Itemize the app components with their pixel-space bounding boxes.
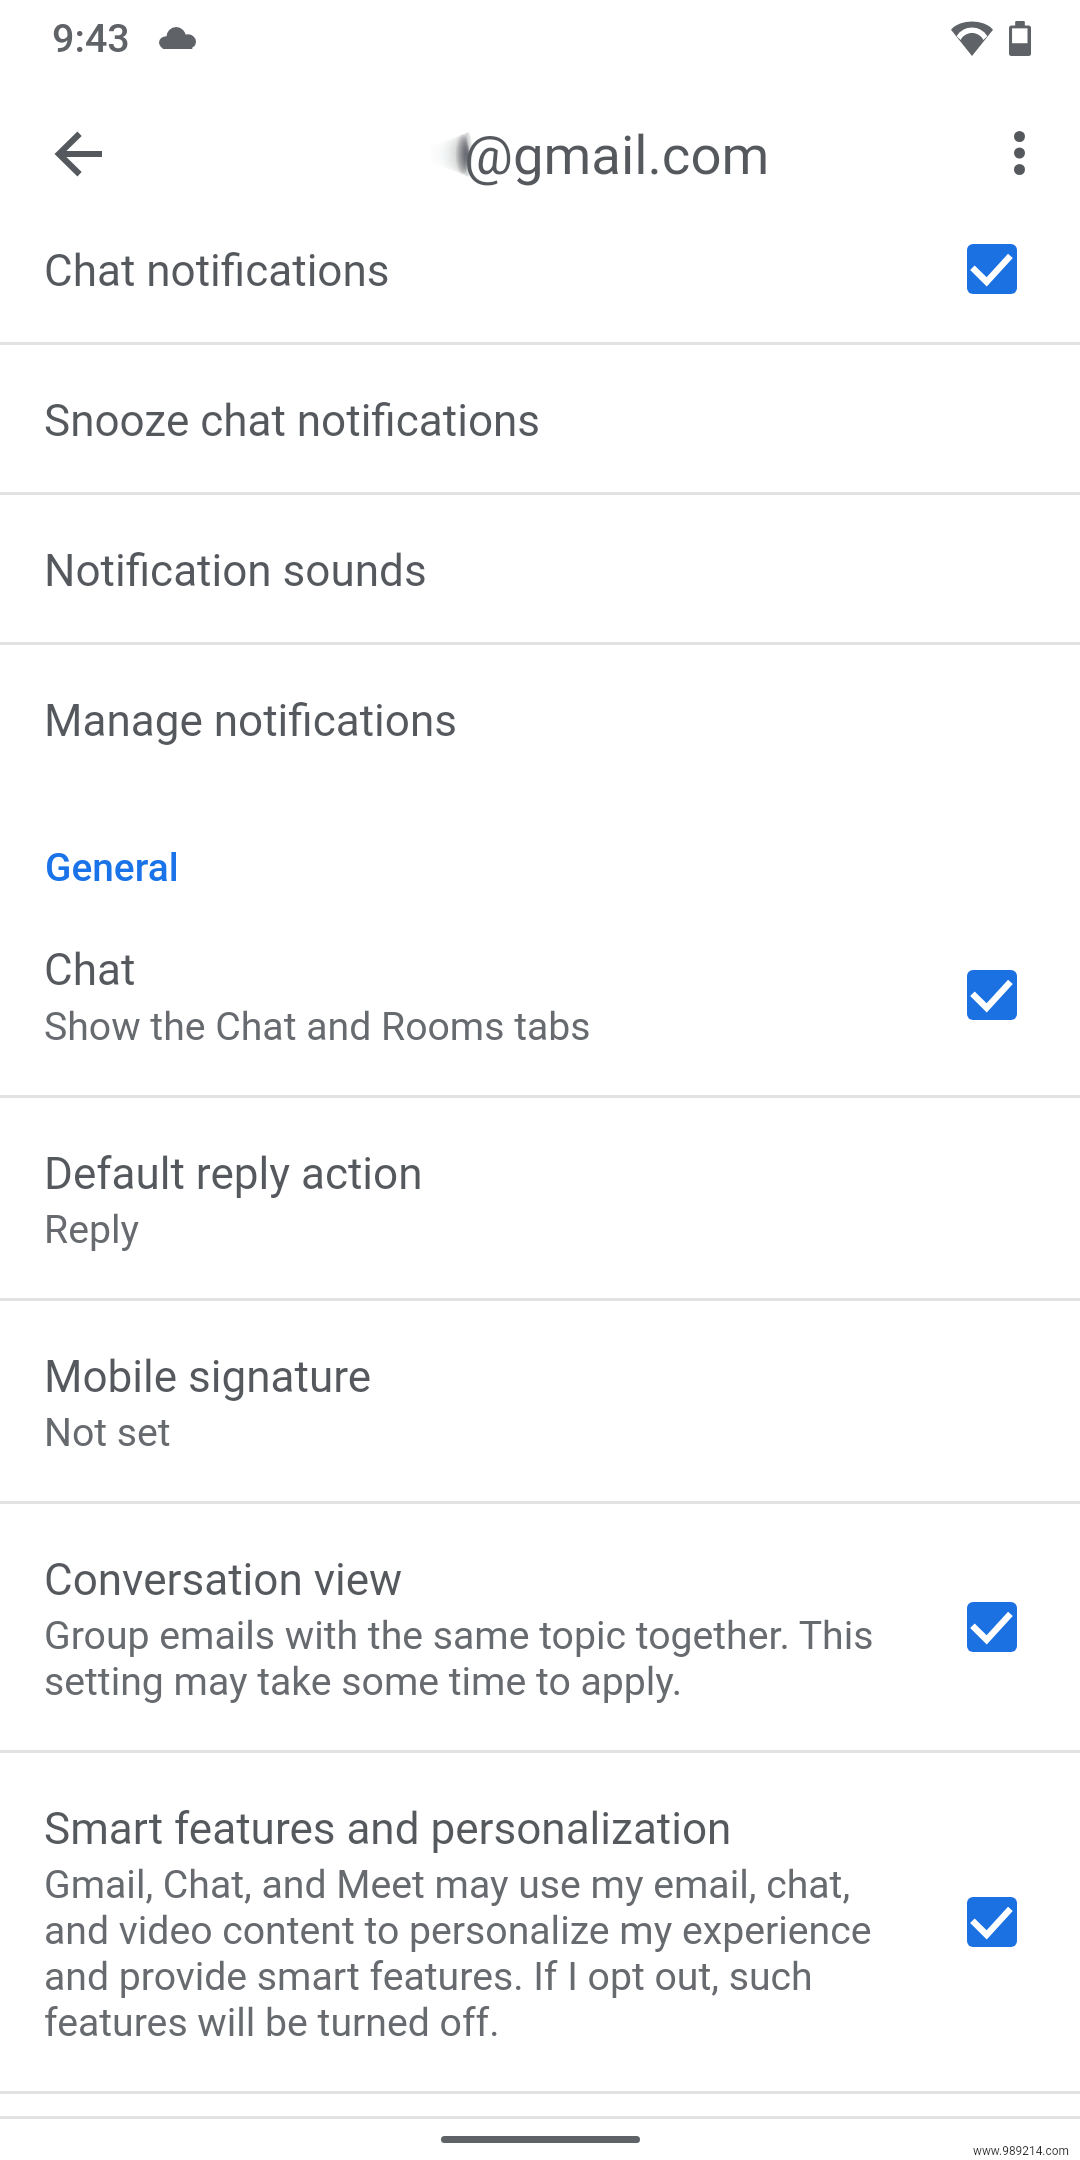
button[interactable]: Smart features and personalization [0, 1753, 1080, 2091]
staticText: Gmail, Chat, and Meet may use my email, … [44, 1861, 906, 2045]
button[interactable]: Chat [0, 905, 1080, 1095]
button[interactable]: Manage notifications [0, 645, 1080, 800]
button[interactable]: Chat notifications [0, 196, 1080, 342]
staticText: Conversation view [44, 1554, 403, 1606]
button[interactable]: Navigate up [36, 110, 124, 198]
button[interactable]: Conversation view [0, 1504, 1080, 1750]
staticText: Manage notifications [44, 695, 458, 747]
button[interactable]: Notification sounds [0, 495, 1080, 642]
staticText: Mobile signature [44, 1351, 372, 1403]
button[interactable]: Default reply action [0, 1098, 1080, 1298]
staticText: Snooze chat notifications [44, 395, 541, 447]
button[interactable]: Chat, checked [967, 970, 1017, 1020]
staticText: Default reply action [44, 1148, 423, 1200]
staticText: @gmail.com [464, 123, 770, 187]
staticText: Group emails with the same topic togethe… [44, 1612, 906, 1704]
button[interactable]: More options [975, 109, 1063, 197]
staticText: 9:43 [52, 15, 130, 61]
button[interactable]: Conversation view, checked [967, 1602, 1017, 1652]
button[interactable]: Chat notifications, checked [967, 244, 1017, 294]
staticText: Not set [44, 1410, 171, 1456]
staticText: Chat [44, 944, 136, 996]
button[interactable]: Smart features and personalization, chec… [967, 1897, 1017, 1947]
staticText: www.989214.com [973, 2144, 1069, 2158]
staticText: Reply [44, 1207, 140, 1253]
staticText: Show the Chat and Rooms tabs [44, 1004, 591, 1050]
staticText: Smart features and personalization [44, 1803, 732, 1855]
button[interactable]: Mobile signature [0, 1301, 1080, 1501]
staticText: Notification sounds [44, 545, 427, 597]
staticText: Chat notifications [44, 245, 390, 297]
staticText: General [45, 845, 179, 890]
button[interactable]: Snooze chat notifications [0, 345, 1080, 492]
